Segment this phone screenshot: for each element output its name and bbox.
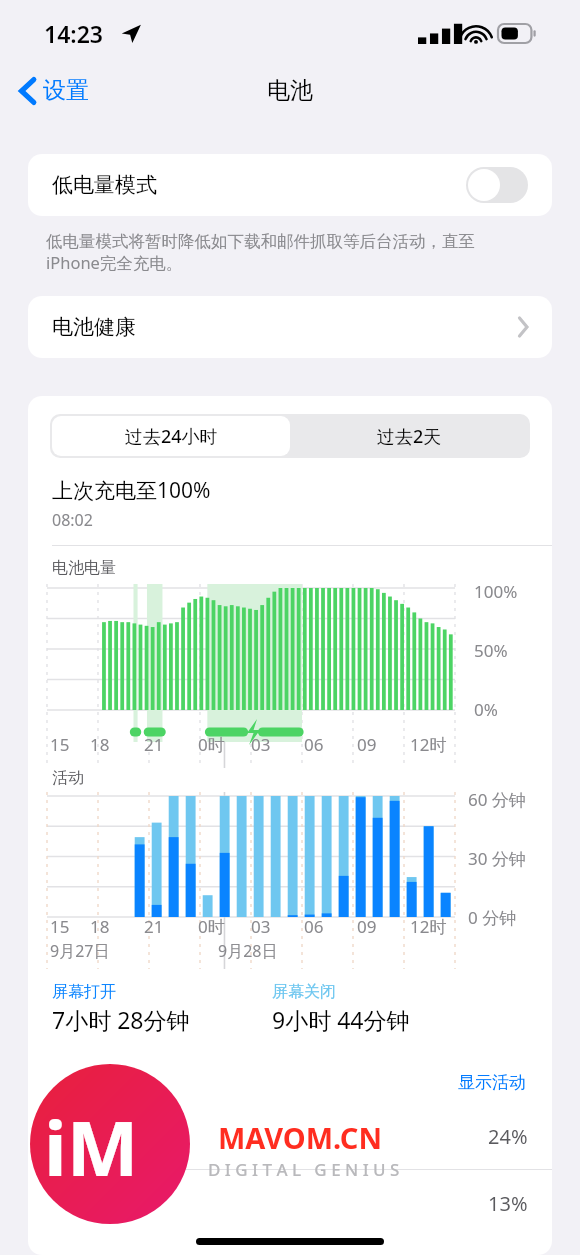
- staticText: 7小时 28分钟: [52, 1004, 190, 1035]
- staticText: 21: [144, 915, 164, 938]
- staticText: 50%: [474, 639, 508, 662]
- button[interactable]: 电池健康: [28, 296, 552, 358]
- staticText: 0%: [474, 698, 498, 721]
- staticText: 18: [90, 915, 110, 938]
- staticText: 100%: [474, 580, 518, 603]
- staticText: 21: [144, 733, 164, 756]
- staticText: 08:02: [52, 509, 93, 531]
- staticText: 24%: [488, 1123, 528, 1150]
- staticText: 过去2天: [377, 424, 442, 449]
- staticText: 9月28日: [218, 940, 278, 962]
- staticText: 过去24小时: [125, 424, 218, 449]
- staticText: 9月27日: [50, 940, 110, 962]
- staticText: 电池: [267, 76, 313, 105]
- button[interactable]: 低电量模式开关: [466, 167, 528, 203]
- staticText: 电池电量: [52, 558, 116, 578]
- staticText: 设置: [43, 76, 89, 105]
- staticText: 03: [251, 915, 271, 938]
- staticText: 0时: [198, 733, 225, 756]
- staticText: MAVOM.CN: [218, 1118, 382, 1157]
- button[interactable]: 过去2天: [290, 416, 528, 456]
- staticText: 屏幕关闭: [272, 982, 336, 1002]
- staticText: 06: [304, 915, 324, 938]
- staticText: 30 分钟: [468, 847, 526, 870]
- staticText: 60 分钟: [468, 788, 526, 811]
- button[interactable]: 设置: [14, 70, 95, 111]
- staticText: 15: [50, 915, 70, 938]
- button[interactable]: 13%: [28, 1170, 552, 1236]
- staticText: 电池健康: [52, 314, 136, 340]
- button[interactable]: 24%: [28, 1103, 552, 1169]
- staticText: 15: [50, 733, 70, 756]
- staticText: 低电量模式将暂时降低如下载和邮件抓取等后台活动，直至 iPhone完全充电。: [46, 231, 475, 274]
- staticText: 14:23: [44, 18, 103, 49]
- staticText: 03: [251, 733, 271, 756]
- staticText: 09: [357, 733, 377, 756]
- staticText: 13%: [488, 1190, 528, 1217]
- staticText: 9小时 44分钟: [272, 1004, 410, 1035]
- staticText: 上次充电至100%: [52, 476, 211, 505]
- staticText: D I G I T A L G E N I U S: [208, 1158, 400, 1181]
- button[interactable]: 显示活动: [454, 1068, 530, 1097]
- staticText: 09: [357, 915, 377, 938]
- button[interactable]: 低电量模式: [28, 154, 552, 216]
- staticText: 0时: [198, 915, 225, 938]
- staticText: 低电量模式: [52, 172, 157, 198]
- button[interactable]: 过去24小时: [52, 416, 290, 456]
- staticText: 活动: [52, 768, 84, 788]
- staticText: 屏幕打开: [52, 982, 116, 1002]
- staticText: 12时: [410, 733, 447, 756]
- staticText: 显示活动: [458, 1072, 526, 1093]
- staticText: 06: [304, 733, 324, 756]
- staticText: 0 分钟: [468, 906, 517, 929]
- staticText: iM: [44, 1095, 139, 1199]
- staticText: 18: [90, 733, 110, 756]
- staticText: 12时: [410, 915, 447, 938]
